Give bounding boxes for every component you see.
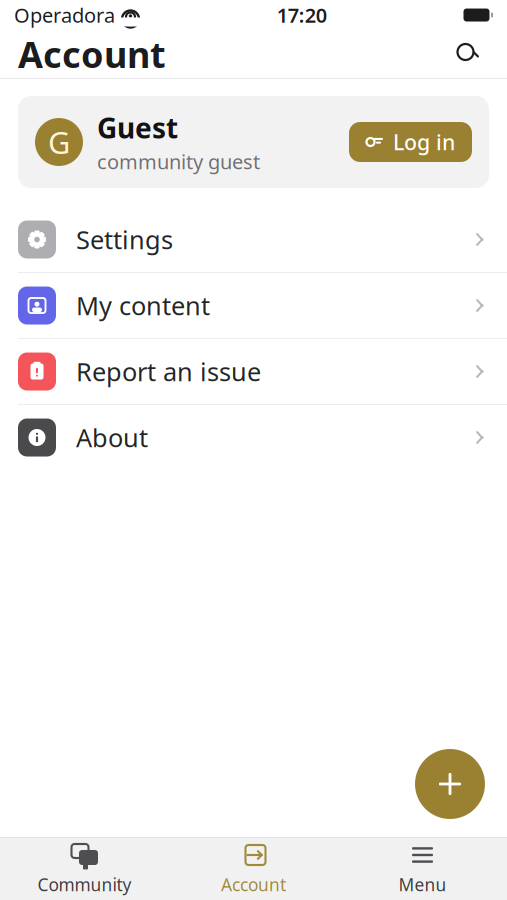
button[interactable]: About bbox=[0, 405, 507, 470]
staticText: G bbox=[48, 122, 70, 162]
staticText: Account bbox=[221, 873, 286, 896]
button[interactable]: My content bbox=[0, 273, 507, 339]
button[interactable]: Menu bbox=[338, 838, 507, 900]
staticText: My content bbox=[76, 289, 210, 322]
staticText: Menu bbox=[398, 873, 446, 896]
staticText: 17:20 bbox=[277, 2, 327, 28]
staticText: Log in bbox=[393, 128, 455, 156]
staticText: Community bbox=[37, 873, 131, 896]
staticText: Report an issue bbox=[76, 355, 261, 388]
button[interactable]: Search bbox=[445, 32, 489, 76]
button[interactable]: Add bbox=[415, 749, 485, 819]
button[interactable]: Report an issue bbox=[0, 339, 507, 405]
button[interactable]: Settings bbox=[0, 207, 507, 273]
button[interactable]: Log in bbox=[349, 122, 472, 162]
button[interactable]: Account bbox=[169, 838, 338, 900]
staticText: About bbox=[76, 421, 148, 454]
button[interactable]: Community bbox=[0, 838, 169, 900]
staticText: Guest bbox=[97, 109, 178, 146]
staticText: Settings bbox=[76, 223, 173, 256]
staticText: Operadora bbox=[14, 2, 115, 28]
staticText: community guest bbox=[97, 148, 260, 175]
staticText: Account bbox=[18, 30, 166, 78]
